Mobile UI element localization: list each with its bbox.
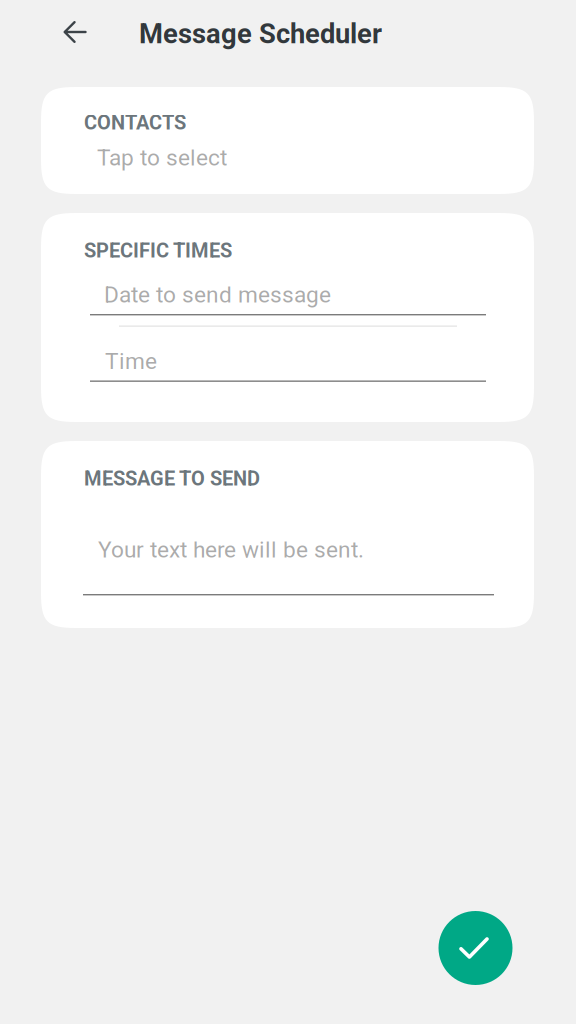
staticText: CONTACTS	[84, 111, 186, 134]
button[interactable]: Back	[48, 7, 102, 61]
staticText: Your text here will be sent.	[98, 536, 364, 563]
staticText: Message Scheduler	[139, 18, 382, 50]
button[interactable]: Time	[41, 348, 534, 382]
button[interactable]: Date to send message	[41, 281, 534, 315]
button[interactable]: Tap to select	[41, 144, 534, 183]
staticText: Date to send message	[104, 281, 331, 308]
button[interactable]: Your text here will be sent.	[41, 536, 534, 595]
staticText: SPECIFIC TIMES	[84, 239, 232, 262]
button[interactable]: Schedule message	[438, 911, 512, 985]
staticText: Time	[105, 348, 157, 374]
staticText: MESSAGE TO SEND	[84, 467, 260, 490]
staticText: Tap to select	[97, 144, 227, 171]
